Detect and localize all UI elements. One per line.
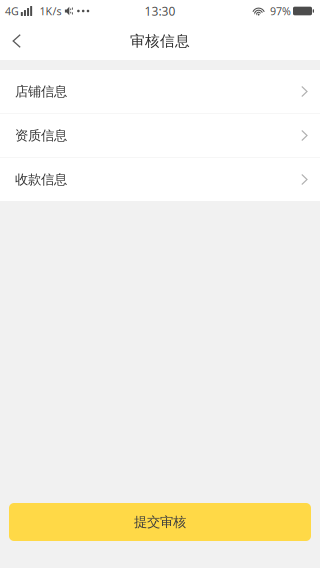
button[interactable]: 资质信息 <box>0 114 320 157</box>
staticText: 13:30 <box>144 3 175 19</box>
staticText: 收款信息 <box>15 171 67 188</box>
staticText: 店铺信息 <box>15 83 67 100</box>
staticText: 4G <box>5 4 19 18</box>
button[interactable]: 收款信息 <box>0 158 320 201</box>
button[interactable]: 提交审核 <box>0 503 320 541</box>
staticText: 审核信息 <box>130 32 190 50</box>
staticText: 1K/s <box>39 4 61 18</box>
button[interactable]: Back <box>0 23 35 59</box>
staticText: 资质信息 <box>15 127 67 144</box>
staticText: 提交审核 <box>134 514 186 530</box>
staticText: 97% <box>270 4 291 18</box>
button[interactable]: 店铺信息 <box>0 70 320 113</box>
